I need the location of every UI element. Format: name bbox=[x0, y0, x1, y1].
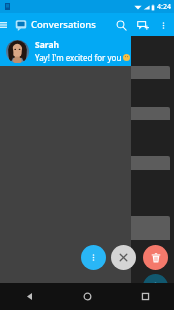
button[interactable]: More options bbox=[154, 16, 172, 34]
button[interactable]: New conversation bbox=[133, 15, 153, 35]
button[interactable]: Recent apps bbox=[116, 283, 174, 310]
button[interactable]: Back bbox=[0, 283, 58, 310]
staticText: 4:24 bbox=[157, 2, 171, 12]
button[interactable]: Conversations bbox=[31, 18, 96, 31]
button[interactable]: Home bbox=[58, 283, 116, 310]
staticText: Yay! I'm excited for you bbox=[35, 52, 122, 63]
button[interactable]: Close bbox=[111, 245, 136, 270]
button[interactable]: Sarah bbox=[0, 36, 131, 66]
button[interactable]: Delete bbox=[143, 245, 168, 270]
button[interactable]: New message bbox=[143, 274, 168, 299]
staticText: Sarah bbox=[35, 39, 60, 51]
button[interactable]: Search bbox=[111, 15, 131, 35]
button[interactable]: More options bbox=[81, 245, 106, 270]
button[interactable]: Open navigation drawer bbox=[0, 18, 10, 32]
